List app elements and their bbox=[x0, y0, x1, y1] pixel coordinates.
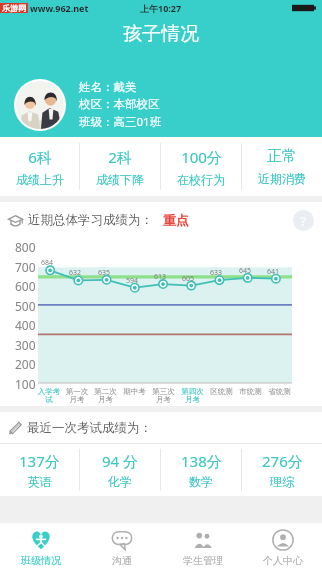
staticText: 上午10:27 bbox=[140, 2, 182, 14]
staticText: 市统测 bbox=[236, 387, 265, 396]
staticText: 理综 bbox=[270, 474, 294, 489]
staticText: 632 bbox=[69, 268, 82, 278]
staticText: 594 bbox=[126, 276, 139, 286]
staticText: 个人中心 bbox=[263, 554, 303, 567]
staticText: 省统测 bbox=[265, 387, 294, 396]
staticText: 276分 bbox=[262, 451, 303, 471]
staticText: 100分 bbox=[181, 147, 222, 167]
staticText: 班级情况 bbox=[21, 554, 61, 567]
staticText: www.962.net bbox=[30, 2, 89, 14]
button[interactable]: 学生管理 bbox=[162, 523, 243, 573]
staticText: ? bbox=[300, 212, 307, 230]
button[interactable]: 276分 bbox=[242, 444, 322, 496]
button[interactable]: 2科 bbox=[80, 137, 160, 196]
staticText: 近期总体学习成绩为： bbox=[28, 212, 153, 228]
staticText: 最近一次考试成绩为： bbox=[27, 420, 152, 436]
staticText: 800 bbox=[15, 239, 36, 255]
button[interactable]: 班级情况 bbox=[0, 523, 81, 573]
staticText: 乐游网 bbox=[2, 3, 26, 13]
staticText: 重点 bbox=[163, 212, 189, 228]
staticText: 英语 bbox=[28, 474, 52, 489]
button[interactable]: 137分 bbox=[0, 444, 79, 496]
staticText: 605 bbox=[182, 274, 195, 284]
staticText: 6科 bbox=[28, 147, 52, 167]
staticText: 正常 bbox=[267, 147, 297, 166]
staticText: 孩子情况 bbox=[123, 22, 199, 46]
staticText: 400 bbox=[15, 317, 36, 333]
staticText: 613 bbox=[154, 272, 167, 282]
button[interactable]: Help bbox=[293, 210, 314, 231]
staticText: 2科 bbox=[108, 147, 132, 167]
button[interactable]: 138分 bbox=[161, 444, 241, 496]
staticText: 近期消费 bbox=[258, 171, 306, 186]
button[interactable]: 沟通 bbox=[81, 523, 162, 573]
staticText: 区统测 bbox=[207, 387, 236, 396]
staticText: 化学 bbox=[108, 474, 132, 489]
staticText: 第三次 月考 bbox=[149, 387, 178, 405]
staticText: 137分 bbox=[19, 451, 60, 471]
staticText: 班级：高三01班 bbox=[79, 114, 162, 130]
staticText: 138分 bbox=[181, 451, 222, 471]
staticText: 学生管理 bbox=[183, 554, 223, 567]
button[interactable]: 94 分 bbox=[80, 444, 160, 496]
staticText: 第四次 月考 bbox=[178, 387, 207, 405]
staticText: 684 bbox=[41, 258, 54, 268]
staticText: 300 bbox=[15, 337, 36, 353]
staticText: 校区：本部校区 bbox=[79, 97, 160, 111]
button[interactable]: 6科 bbox=[0, 137, 79, 196]
staticText: 600 bbox=[15, 278, 36, 294]
staticText: 成绩下降 bbox=[96, 172, 144, 187]
button[interactable]: 正常 bbox=[242, 137, 322, 196]
staticText: 200 bbox=[15, 356, 36, 372]
staticText: 姓名：戴美 bbox=[79, 80, 137, 94]
staticText: 沟通 bbox=[112, 554, 132, 567]
staticText: 数学 bbox=[189, 474, 213, 489]
staticText: 94 分 bbox=[102, 451, 139, 471]
staticText: 641 bbox=[267, 267, 280, 277]
staticText: 第一次 月考 bbox=[63, 387, 91, 405]
staticText: 在校行为 bbox=[177, 172, 225, 187]
staticText: 700 bbox=[15, 259, 36, 275]
button[interactable]: 100分 bbox=[161, 137, 241, 196]
staticText: 入学考 试 bbox=[35, 387, 63, 405]
staticText: 635 bbox=[98, 268, 111, 278]
staticText: 100 bbox=[15, 376, 36, 392]
button[interactable]: 个人中心 bbox=[243, 523, 322, 573]
staticText: 645 bbox=[239, 266, 252, 276]
staticText: 第二次 月考 bbox=[91, 387, 120, 405]
staticText: 633 bbox=[210, 268, 223, 278]
staticText: 期中考 bbox=[120, 387, 149, 396]
staticText: 成绩上升 bbox=[16, 172, 64, 187]
button[interactable]: Student photo bbox=[16, 81, 64, 129]
staticText: 500 bbox=[15, 298, 36, 314]
